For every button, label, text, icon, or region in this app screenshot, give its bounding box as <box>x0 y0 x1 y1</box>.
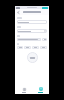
button[interactable] <box>32 46 39 49</box>
button[interactable]: Calculate <box>27 52 38 63</box>
button[interactable] <box>42 38 47 41</box>
button[interactable] <box>17 38 41 41</box>
button[interactable] <box>40 46 47 49</box>
button[interactable]: Calculator <box>32 86 49 94</box>
button[interactable] <box>17 46 23 49</box>
button[interactable]: Back <box>15 9 49 15</box>
button[interactable]: Back <box>17 11 20 14</box>
button[interactable] <box>24 46 31 49</box>
button[interactable] <box>17 20 47 24</box>
button[interactable] <box>17 29 47 33</box>
button[interactable]: List <box>15 86 32 94</box>
